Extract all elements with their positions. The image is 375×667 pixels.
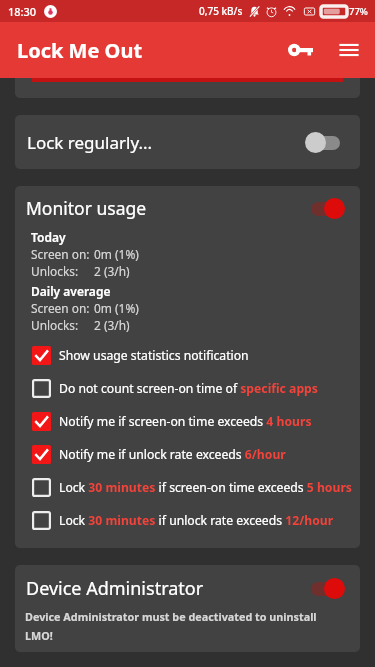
- staticText: Screen on:: [31, 246, 90, 262]
- staticText: Daily average: [31, 283, 111, 299]
- staticText: Lock regularly...: [27, 131, 153, 154]
- staticText: 77%: [349, 5, 368, 18]
- staticText: 0,75 kB/s: [199, 4, 243, 18]
- button[interactable]: Notify me if unlock rate exceeds 6/hour: [32, 438, 358, 471]
- button[interactable]: Lock 30 minutes if screen-on time exceed…: [32, 471, 358, 504]
- staticText: Today: [31, 229, 66, 245]
- button[interactable]: [15, 78, 360, 98]
- staticText: 18:30: [8, 4, 37, 19]
- staticText: Device Administrator must be deactivated…: [25, 609, 321, 643]
- staticText: Do not count screen-on time of specific …: [59, 380, 318, 397]
- staticText: Unlocks:: [31, 317, 79, 333]
- staticText: Notify me if screen-on time exceeds 4 ho…: [59, 413, 312, 430]
- staticText: Lock 30 minutes if screen-on time exceed…: [59, 479, 352, 496]
- button[interactable]: Do not count screen-on time of specific …: [32, 372, 358, 405]
- staticText: Lock 30 minutes if unlock rate exceeds 1…: [59, 512, 334, 529]
- staticText: 2 (3/h): [94, 263, 130, 279]
- staticText: Unlocks:: [31, 263, 79, 279]
- staticText: 0m (1%): [94, 300, 139, 316]
- button[interactable]: Lock 30 minutes if unlock rate exceeds 1…: [32, 504, 358, 537]
- staticText: Show usage statistics notification: [59, 347, 249, 364]
- staticText: Monitor usage: [26, 196, 147, 220]
- button[interactable]: Notify me if screen-on time exceeds 4 ho…: [32, 405, 358, 438]
- button[interactable]: Unlock: [277, 26, 325, 74]
- staticText: 0m (1%): [94, 246, 139, 262]
- staticText: Screen on:: [31, 300, 90, 316]
- staticText: Lock Me Out: [17, 37, 143, 64]
- staticText: Notify me if unlock rate exceeds 6/hour: [59, 446, 286, 463]
- staticText: 2 (3/h): [94, 317, 130, 333]
- button[interactable]: Show usage statistics notification: [32, 339, 358, 372]
- button[interactable]: Lock regularly...: [15, 115, 360, 169]
- staticText: Device Administrator: [26, 576, 204, 601]
- button[interactable]: Menu: [325, 26, 373, 74]
